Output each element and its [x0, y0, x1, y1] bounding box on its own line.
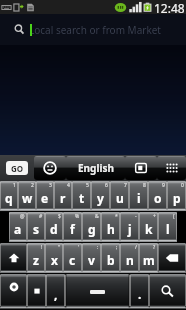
staticText: GO [11, 163, 24, 174]
staticText: 7 [124, 182, 127, 189]
button[interactable]: h [101, 212, 120, 243]
button[interactable]: p [167, 181, 186, 212]
button[interactable]: English [66, 156, 125, 180]
staticText: / [135, 244, 137, 251]
button[interactable]: g [82, 212, 101, 243]
button[interactable]: Shift [0, 243, 27, 274]
staticText: v [88, 252, 95, 268]
staticText: " [58, 244, 61, 251]
button[interactable]: b [101, 243, 120, 274]
staticText: , [54, 286, 58, 302]
button[interactable]: . [130, 274, 149, 310]
staticText: m [143, 252, 155, 268]
staticText: p [173, 190, 181, 206]
button[interactable]: v [82, 243, 101, 274]
staticText: 2 [31, 182, 34, 189]
button[interactable]: w [18, 181, 36, 212]
staticText: : [97, 244, 99, 251]
staticText: * [115, 213, 118, 220]
staticText: h [107, 221, 115, 237]
staticText: r [60, 190, 66, 206]
button[interactable]: q [0, 181, 18, 212]
staticText: 8 [143, 182, 146, 189]
button[interactable]: Search [149, 274, 186, 310]
staticText: ; [116, 244, 118, 251]
button[interactable]: x [45, 243, 63, 274]
staticText: $ [58, 213, 61, 220]
staticText: ! [41, 244, 43, 251]
staticText: c [69, 252, 76, 268]
staticText: # [39, 213, 43, 220]
staticText: - [135, 213, 137, 220]
staticText: . [138, 286, 142, 302]
staticText: j [128, 221, 132, 237]
button[interactable]: Symbols [0, 274, 27, 310]
staticText: ' [78, 244, 80, 251]
button[interactable]: Keyboard layouts [157, 156, 186, 180]
staticText: Local search or from Market [29, 23, 161, 37]
staticText: 0 [181, 182, 184, 189]
button[interactable]: u [110, 181, 129, 212]
staticText: q [5, 190, 13, 206]
staticText: i [137, 190, 141, 206]
button[interactable]: f [63, 212, 82, 243]
staticText: t [79, 190, 85, 206]
staticText: ? [153, 244, 156, 251]
staticText: u [116, 190, 124, 206]
button[interactable]: Switch input method [125, 156, 157, 180]
staticText: s [33, 221, 40, 237]
button[interactable]: n [120, 243, 139, 274]
staticText: @ [20, 213, 25, 220]
staticText: g [88, 221, 96, 237]
staticText: 12:48 [154, 0, 185, 14]
staticText: d [50, 221, 58, 237]
button[interactable]: j [120, 212, 139, 243]
button[interactable]: , [46, 274, 65, 310]
button[interactable]: Input options [27, 274, 46, 310]
staticText: l [166, 221, 170, 237]
staticText: e [41, 190, 49, 206]
button[interactable]: e [36, 181, 54, 212]
button[interactable] [65, 274, 130, 310]
button[interactable]: o [148, 181, 167, 212]
staticText: ( [173, 213, 175, 220]
staticText: 1 [13, 182, 16, 189]
staticText: n [126, 252, 134, 268]
button[interactable]: r [54, 181, 72, 212]
staticText: a [14, 221, 22, 237]
button[interactable]: l [158, 212, 177, 243]
button[interactable]: i [129, 181, 148, 212]
staticText: f [70, 221, 75, 237]
button[interactable]: z [27, 243, 45, 274]
button[interactable]: GO [0, 155, 34, 181]
button[interactable]: y [91, 181, 110, 212]
staticText: + [153, 213, 156, 220]
button[interactable]: c [63, 243, 82, 274]
staticText: k [145, 221, 153, 237]
button[interactable]: t [72, 181, 91, 212]
staticText: English [78, 161, 114, 175]
button[interactable]: k [139, 212, 158, 243]
staticText: b [107, 252, 115, 268]
staticText: x [51, 252, 58, 268]
staticText: z [33, 252, 39, 268]
staticText: w [22, 190, 33, 206]
staticText: y [97, 190, 104, 206]
button[interactable]: Local search or from Market [0, 14, 186, 45]
staticText: & [95, 213, 99, 220]
button[interactable]: d [45, 212, 63, 243]
button[interactable]: Emoji [34, 156, 66, 180]
staticText: 6 [105, 182, 108, 189]
button[interactable]: Backspace [158, 243, 186, 274]
staticText: 5 [86, 182, 89, 189]
staticText: 3 [49, 182, 52, 189]
staticText: 4 [67, 182, 70, 189]
button[interactable]: m [139, 243, 158, 274]
staticText: 9 [162, 182, 165, 189]
staticText: o [154, 190, 162, 206]
button[interactable]: s [27, 212, 45, 243]
staticText: % [75, 213, 80, 220]
button[interactable]: a [9, 212, 27, 243]
